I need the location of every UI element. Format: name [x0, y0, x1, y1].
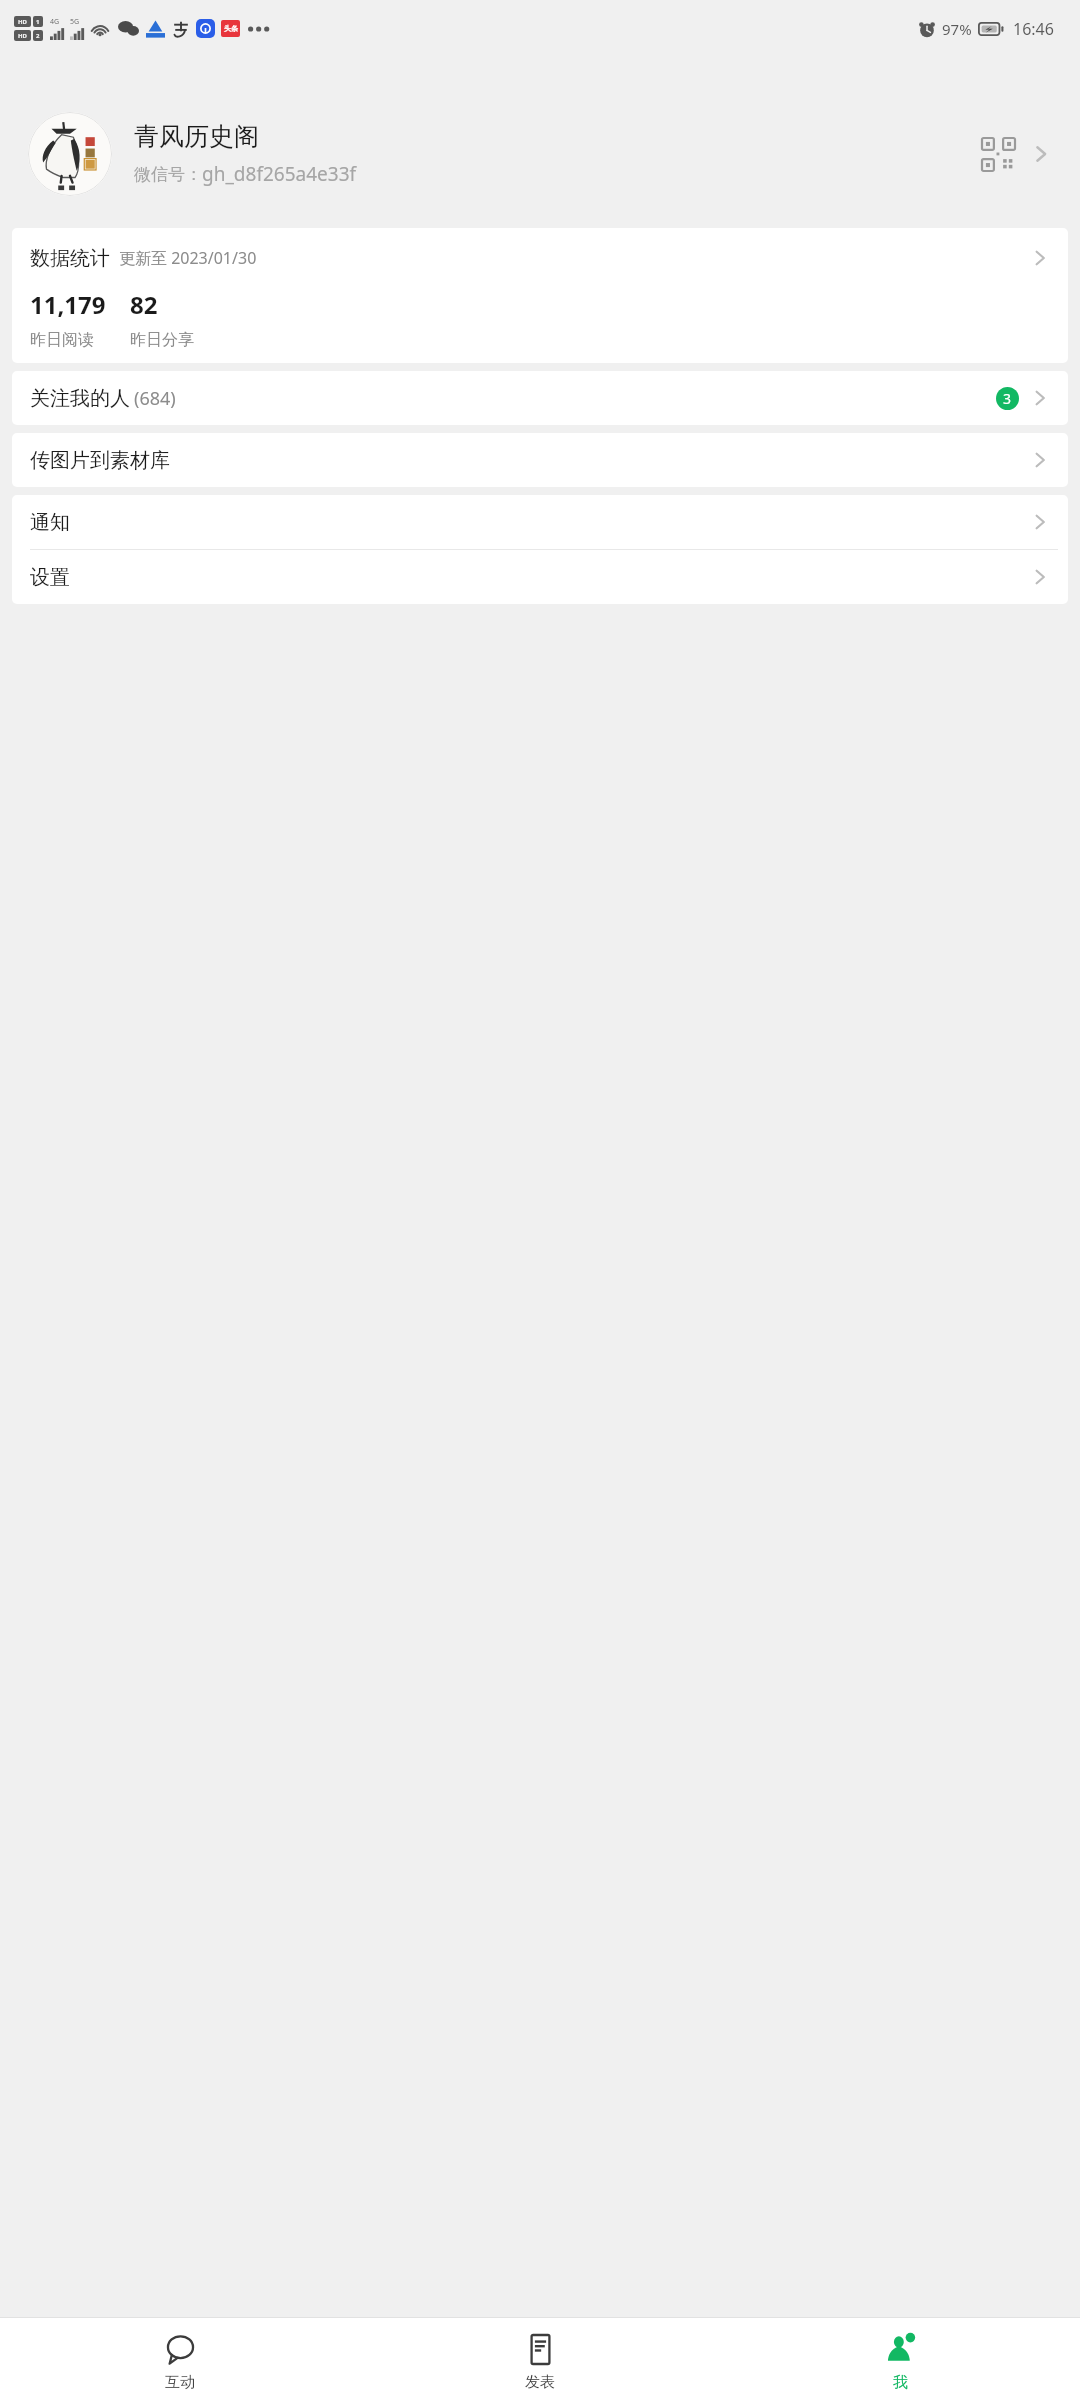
button[interactable]: 数据统计	[12, 228, 1068, 288]
button[interactable]: 传图片到素材库	[12, 433, 1068, 487]
staticText: 昨日分享	[130, 330, 194, 350]
staticText: 数据统计	[30, 246, 110, 271]
button[interactable]: 设置	[12, 550, 1068, 604]
staticText: 青风历史阁	[134, 121, 259, 152]
staticText: 4G	[50, 17, 60, 27]
staticText: 传图片到素材库	[30, 448, 170, 473]
staticText: 昨日阅读	[30, 330, 94, 350]
staticText: 11,179	[30, 288, 106, 321]
staticText: HD	[18, 32, 27, 40]
button[interactable]: 青风历史阁	[0, 104, 1080, 204]
button[interactable]: 发表	[360, 2327, 720, 2392]
staticText: HD	[18, 18, 27, 26]
staticText: 通知	[30, 510, 70, 535]
button[interactable]: 互动	[0, 2327, 360, 2392]
button[interactable]: 二维码	[976, 132, 1020, 176]
button[interactable]: 通知	[12, 495, 1068, 549]
staticText: 16:46	[1013, 18, 1054, 40]
button[interactable]: 关注我的人	[12, 371, 1068, 425]
staticText: 关注我的人	[30, 386, 130, 411]
staticText: 5G	[70, 17, 80, 27]
staticText: 3	[1003, 389, 1012, 408]
button[interactable]: 我	[720, 2327, 1080, 2392]
staticText: 设置	[30, 565, 70, 590]
staticText: 97%	[942, 19, 972, 39]
staticText: 更新至 2023/01/30	[119, 247, 257, 269]
staticText: 2	[36, 32, 40, 40]
staticText: 互动	[165, 2373, 195, 2392]
staticText: (684)	[134, 386, 176, 411]
staticText: 我	[893, 2373, 908, 2392]
staticText: gh_d8f265a4e33f	[202, 161, 357, 187]
staticText: 头条	[224, 24, 238, 33]
staticText: 1	[36, 18, 40, 26]
staticText: 发表	[525, 2373, 555, 2392]
staticText: 82	[130, 288, 158, 321]
staticText: 微信号：	[134, 164, 202, 185]
